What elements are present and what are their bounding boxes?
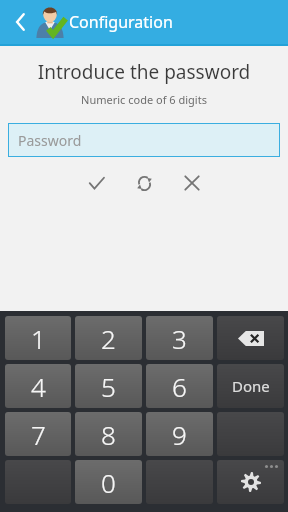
button[interactable]: Key	[217, 412, 284, 456]
staticText: 8	[101, 417, 116, 452]
button[interactable]: Password	[8, 123, 280, 157]
staticText: 3	[172, 321, 187, 356]
button[interactable]: Key	[5, 460, 71, 504]
staticText: 7	[31, 417, 46, 452]
button[interactable]: 9	[146, 412, 213, 456]
button[interactable]: Back	[3, 7, 33, 37]
button[interactable]: Key	[146, 460, 213, 504]
button[interactable]: Refresh	[127, 170, 161, 196]
staticText: Password	[18, 131, 82, 150]
button[interactable]: Backspace	[217, 316, 284, 360]
staticText: Configuration	[69, 11, 173, 33]
staticText: 2	[101, 321, 116, 356]
button[interactable]: Done	[217, 364, 284, 408]
staticText: Done	[232, 376, 270, 396]
button[interactable]: 0	[75, 460, 142, 504]
button[interactable]: 3	[146, 316, 213, 360]
staticText: 0	[101, 465, 116, 500]
button[interactable]: 1	[5, 316, 71, 360]
button[interactable]: Accept	[79, 170, 113, 196]
button[interactable]: 8	[75, 412, 142, 456]
button[interactable]: 7	[5, 412, 71, 456]
staticText: 5	[101, 369, 116, 404]
staticText: Introduce the password	[0, 59, 288, 85]
staticText: 9	[172, 417, 187, 452]
staticText: 1	[31, 321, 46, 356]
button[interactable]: 6	[146, 364, 213, 408]
staticText: Numeric code of 6 digits	[0, 92, 288, 107]
button[interactable]: 2	[75, 316, 142, 360]
button[interactable]: Keyboard settings	[217, 460, 284, 504]
staticText: 6	[172, 369, 187, 404]
button[interactable]: 4	[5, 364, 71, 408]
button[interactable]: 5	[75, 364, 142, 408]
button[interactable]: Cancel	[175, 170, 209, 196]
staticText: 4	[31, 369, 46, 404]
